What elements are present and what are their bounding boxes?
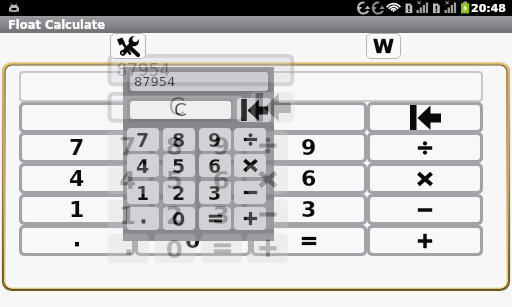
button[interactable] bbox=[254, 135, 364, 160]
staticText: C bbox=[174, 99, 187, 121]
staticText: 0 bbox=[185, 228, 201, 254]
button[interactable] bbox=[254, 228, 364, 253]
button[interactable] bbox=[138, 105, 248, 130]
button[interactable]: 4 bbox=[127, 154, 159, 177]
button[interactable] bbox=[22, 105, 132, 130]
button[interactable] bbox=[130, 101, 231, 119]
staticText: 3 bbox=[213, 201, 231, 229]
button[interactable] bbox=[127, 207, 159, 230]
button[interactable] bbox=[370, 197, 480, 222]
button[interactable] bbox=[199, 207, 231, 230]
staticText: 0 bbox=[172, 208, 186, 230]
staticText: 1 bbox=[136, 182, 150, 204]
staticText: 20:48 bbox=[471, 2, 507, 15]
button[interactable] bbox=[370, 135, 480, 160]
button[interactable] bbox=[234, 181, 266, 204]
button[interactable]: 8 bbox=[163, 128, 195, 151]
staticText: 5 bbox=[166, 166, 184, 194]
staticText: 8 bbox=[166, 132, 184, 160]
button[interactable]: W bbox=[366, 33, 401, 59]
staticText: 1 bbox=[119, 201, 137, 229]
button[interactable]: 9 bbox=[199, 128, 231, 151]
button[interactable] bbox=[234, 128, 266, 151]
staticText: 6 bbox=[301, 166, 317, 192]
staticText: W bbox=[373, 35, 394, 57]
staticText: 6 bbox=[213, 166, 231, 194]
button[interactable]: 0 bbox=[163, 207, 195, 230]
button[interactable] bbox=[254, 166, 364, 191]
button[interactable]: 6 bbox=[199, 154, 231, 177]
staticText: 87954 bbox=[134, 74, 176, 89]
button[interactable]: 3 bbox=[199, 181, 231, 204]
staticText: 8 bbox=[185, 135, 201, 161]
button[interactable] bbox=[138, 197, 248, 222]
staticText: 7 bbox=[136, 129, 150, 151]
staticText: 8 bbox=[172, 129, 186, 151]
button[interactable] bbox=[22, 135, 132, 160]
button[interactable]: Tools bbox=[110, 33, 146, 59]
staticText: C bbox=[168, 93, 185, 121]
button[interactable]: 7 bbox=[127, 128, 159, 151]
button[interactable] bbox=[138, 228, 248, 253]
button[interactable]: 5 bbox=[163, 154, 195, 177]
staticText: 9 bbox=[213, 132, 231, 160]
staticText: 7 bbox=[69, 135, 85, 161]
staticText: 3 bbox=[301, 197, 317, 223]
staticText: 0 bbox=[166, 235, 184, 263]
button[interactable] bbox=[22, 197, 132, 222]
staticText: Float Calculate bbox=[8, 18, 106, 31]
button[interactable] bbox=[370, 166, 480, 191]
staticText: 1 bbox=[69, 197, 85, 223]
button[interactable] bbox=[370, 228, 480, 253]
staticText: 9 bbox=[301, 135, 317, 161]
button[interactable] bbox=[254, 197, 364, 222]
button[interactable] bbox=[254, 105, 364, 130]
button[interactable] bbox=[370, 105, 480, 130]
staticText: 4 bbox=[136, 155, 150, 177]
button[interactable] bbox=[21, 73, 481, 100]
staticText: 3 bbox=[208, 182, 222, 204]
staticText: 2 bbox=[185, 197, 201, 223]
staticText: 5 bbox=[172, 155, 186, 177]
button[interactable] bbox=[234, 207, 266, 230]
button[interactable] bbox=[22, 228, 132, 253]
button[interactable] bbox=[138, 166, 248, 191]
button[interactable] bbox=[234, 154, 266, 177]
button[interactable]: 2 bbox=[163, 181, 195, 204]
staticText: 4 bbox=[119, 166, 137, 194]
button[interactable] bbox=[138, 135, 248, 160]
staticText: 2 bbox=[166, 201, 184, 229]
staticText: 7 bbox=[119, 132, 137, 160]
staticText: 9 bbox=[208, 129, 222, 151]
staticText: 2 bbox=[172, 182, 186, 204]
button[interactable]: Backspace bbox=[237, 98, 271, 122]
button[interactable]: 1 bbox=[127, 181, 159, 204]
staticText: 87954 bbox=[116, 60, 171, 80]
staticText: 6 bbox=[208, 155, 222, 177]
staticText: 5 bbox=[185, 166, 201, 192]
button[interactable] bbox=[22, 166, 132, 191]
staticText: 4 bbox=[69, 166, 85, 192]
